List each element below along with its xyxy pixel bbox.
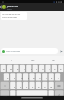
button[interactable]: u bbox=[40, 64, 46, 73]
staticText: ⏎ bbox=[58, 94, 61, 97]
staticText: w bbox=[10, 67, 12, 70]
staticText: b bbox=[38, 85, 40, 88]
staticText: a bbox=[7, 76, 9, 79]
button[interactable]: r bbox=[21, 64, 28, 73]
button[interactable]: g bbox=[31, 73, 37, 82]
button[interactable]: t bbox=[28, 64, 34, 73]
staticText: ⇧ bbox=[4, 85, 7, 88]
button[interactable]: f bbox=[25, 73, 31, 82]
button[interactable]: z bbox=[11, 82, 18, 91]
staticText: t bbox=[31, 67, 32, 70]
button[interactable]: y bbox=[34, 64, 40, 73]
button[interactable]: I'm bbox=[43, 56, 64, 64]
button[interactable]: j bbox=[43, 73, 49, 82]
staticText: l bbox=[58, 76, 59, 79]
staticText: x bbox=[20, 85, 22, 88]
button[interactable]: a bbox=[4, 73, 11, 82]
button[interactable]: b bbox=[36, 82, 42, 91]
staticText: q bbox=[3, 67, 5, 70]
staticText: . bbox=[51, 94, 52, 97]
staticText: j bbox=[46, 76, 47, 79]
staticText: Jordan Lee bbox=[7, 5, 19, 8]
button[interactable]: Space bbox=[16, 91, 48, 100]
button[interactable]: Enter bbox=[54, 91, 64, 100]
staticText: p bbox=[60, 67, 62, 70]
staticText: s bbox=[14, 76, 16, 79]
button[interactable]: c bbox=[24, 82, 30, 91]
staticText: Type a message bbox=[6, 50, 21, 53]
button[interactable]: The bbox=[22, 56, 43, 64]
button[interactable]: Backspace bbox=[54, 82, 64, 91]
staticText: I bbox=[11, 59, 12, 62]
staticText: The bbox=[31, 59, 35, 62]
staticText: ⌫ bbox=[57, 85, 61, 88]
staticText: g bbox=[33, 76, 35, 79]
button[interactable]: s bbox=[11, 73, 18, 82]
staticText: u bbox=[42, 67, 44, 70]
staticText: o bbox=[54, 67, 56, 70]
button[interactable]: w bbox=[7, 64, 14, 73]
staticText: c bbox=[26, 85, 28, 88]
button[interactable]: v bbox=[30, 82, 36, 91]
button[interactable]: m bbox=[48, 82, 54, 91]
staticText: Hi! Are we still on for lunch tomorrow? bbox=[2, 13, 21, 19]
button[interactable]: , bbox=[10, 91, 16, 100]
button[interactable]: i bbox=[46, 64, 52, 73]
staticText: h bbox=[39, 76, 41, 79]
staticText: e bbox=[17, 67, 19, 70]
button[interactable]: . bbox=[48, 91, 54, 100]
button[interactable]: Shift bbox=[0, 82, 11, 91]
staticText: z bbox=[14, 85, 16, 88]
staticText: y bbox=[36, 67, 38, 70]
button[interactable]: o bbox=[52, 64, 58, 73]
staticText: i bbox=[49, 67, 50, 70]
button[interactable]: k bbox=[49, 73, 55, 82]
staticText: r bbox=[24, 67, 25, 70]
button[interactable]: n bbox=[42, 82, 48, 91]
staticText: k bbox=[51, 76, 53, 79]
button[interactable]: d bbox=[18, 73, 25, 82]
button[interactable]: ?123 bbox=[0, 91, 10, 100]
staticText: I'm bbox=[52, 59, 55, 62]
staticText: v bbox=[32, 85, 34, 88]
staticText: ?123 bbox=[3, 95, 7, 97]
button[interactable]: e bbox=[14, 64, 21, 73]
staticText: online bbox=[7, 8, 12, 10]
button[interactable]: h bbox=[37, 73, 43, 82]
button[interactable]: p bbox=[58, 64, 64, 73]
staticText: , bbox=[13, 94, 14, 97]
staticText: d bbox=[21, 76, 23, 79]
button[interactable]: l bbox=[55, 73, 61, 82]
staticText: n bbox=[44, 85, 46, 88]
staticText: f bbox=[28, 76, 29, 79]
staticText: m bbox=[50, 85, 53, 88]
button[interactable]: Type a message bbox=[1, 48, 58, 54]
button[interactable]: q bbox=[0, 64, 7, 73]
button[interactable]: Back bbox=[0, 3, 2, 11]
button[interactable]: Send bbox=[59, 49, 63, 53]
button[interactable]: x bbox=[18, 82, 24, 91]
